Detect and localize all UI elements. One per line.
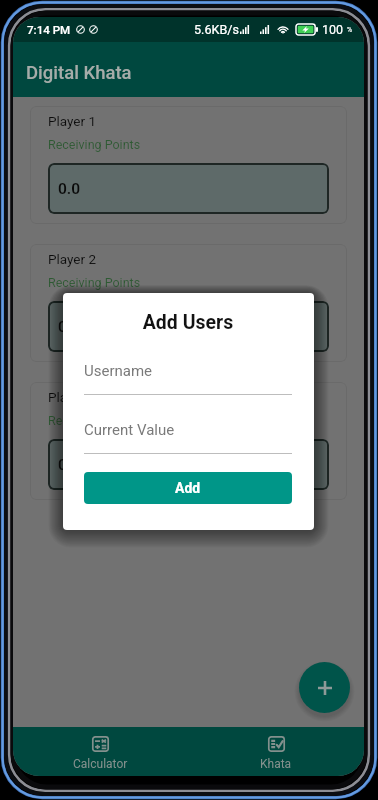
staticText: Khata <box>260 757 292 771</box>
button[interactable]: Add <box>84 472 292 504</box>
staticText: Receiving Points <box>48 137 141 152</box>
staticText: 0.0 <box>58 318 81 336</box>
button[interactable]: Khata <box>188 727 364 776</box>
button[interactable]: Player 1 <box>30 106 347 224</box>
button[interactable]: 0.0 <box>48 301 329 352</box>
staticText: Receiving Points <box>48 275 141 290</box>
staticText: 7:14 PM <box>27 23 71 37</box>
staticText: % <box>347 26 353 34</box>
staticText: Receiving Points <box>48 413 141 428</box>
staticText: Add <box>175 480 201 496</box>
button[interactable]: Player 3 <box>30 382 347 500</box>
staticText: 0.0 <box>58 180 81 198</box>
staticText: Calculator <box>73 757 128 771</box>
staticText: Player 3 <box>48 389 97 405</box>
staticText: Player 2 <box>48 251 97 267</box>
button[interactable]: Add user <box>299 662 350 713</box>
staticText: Add Users <box>84 311 292 334</box>
staticText: 5.6KB/s <box>194 22 239 37</box>
staticText: Player 1 <box>48 113 97 129</box>
button[interactable]: 0.0 <box>48 439 329 490</box>
staticText: 100 <box>322 22 344 37</box>
staticText: Digital Khata <box>26 62 132 84</box>
staticText: Current Value <box>84 421 175 439</box>
staticText: Username <box>84 362 153 380</box>
staticText: 0.0 <box>58 456 81 474</box>
button[interactable]: Player 2 <box>30 244 347 362</box>
button[interactable]: Calculator <box>13 727 188 776</box>
button[interactable]: 0.0 <box>48 163 329 214</box>
